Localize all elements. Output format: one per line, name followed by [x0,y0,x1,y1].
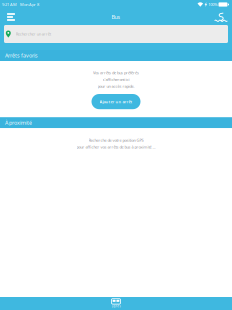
staticText: À proximité [5,119,32,126]
staticText: 100% [208,2,217,7]
button[interactable]: Itinéraires [212,9,230,24]
button[interactable]: Lignes [0,297,232,310]
staticText: Recherche de votre position GPS [88,137,143,143]
staticText: pour un accès rapide. [97,83,134,89]
button[interactable]: Menu [2,9,20,24]
staticText: pour afficher vos arrêts de bus à proxim… [76,144,155,149]
staticText: 9:21 AM Mon Apr 8 [2,2,39,7]
staticText: Ajouter un arrêt [99,99,132,104]
staticText: Bus [111,13,120,21]
staticText: Vos arrêts de bus préférés [93,70,139,75]
staticText: Lignes [111,304,120,308]
staticText: Arrêts favoris [5,52,38,59]
button[interactable]: Ajouter un arrêt [91,94,140,109]
button[interactable]: Rechercher un arrêt [4,25,228,43]
staticText: Rechercher un arrêt [16,31,51,37]
staticText: s'afficheront ici [102,77,129,82]
